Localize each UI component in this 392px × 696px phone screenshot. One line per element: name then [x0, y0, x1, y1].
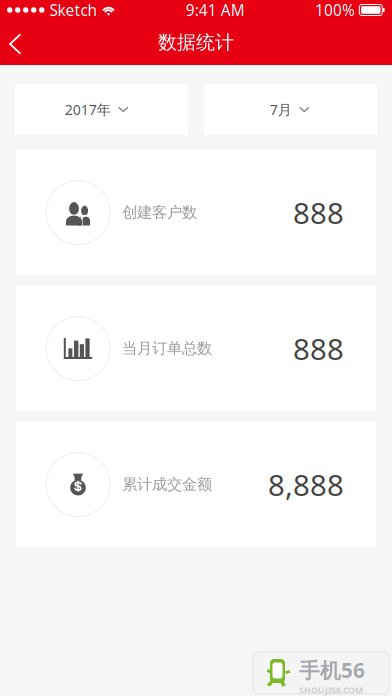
- staticText: 888: [293, 192, 344, 232]
- staticText: 100%: [315, 0, 355, 20]
- staticText: 数据统计: [158, 31, 234, 54]
- staticText: 888: [293, 328, 344, 368]
- button[interactable]: 当月订单总数: [16, 286, 376, 411]
- staticText: Sketch: [49, 0, 96, 20]
- staticText: 7月: [270, 100, 292, 119]
- staticText: 8,888: [268, 464, 344, 504]
- staticText: 手机56: [299, 656, 365, 684]
- button[interactable]: 创建客户数: [16, 150, 376, 275]
- staticText: 9:41 AM: [186, 0, 245, 20]
- staticText: 当月订单总数: [122, 339, 212, 358]
- staticText: 2017年: [65, 100, 111, 119]
- staticText: 创建客户数: [122, 203, 197, 222]
- staticText: 累计成交金额: [122, 475, 212, 494]
- button[interactable]: 7月: [204, 84, 377, 135]
- button[interactable]: Back: [0, 20, 40, 65]
- staticText: SHOUJI56.COM: [299, 684, 363, 696]
- button[interactable]: 累计成交金额: [16, 422, 376, 547]
- button[interactable]: 2017年: [15, 84, 188, 135]
